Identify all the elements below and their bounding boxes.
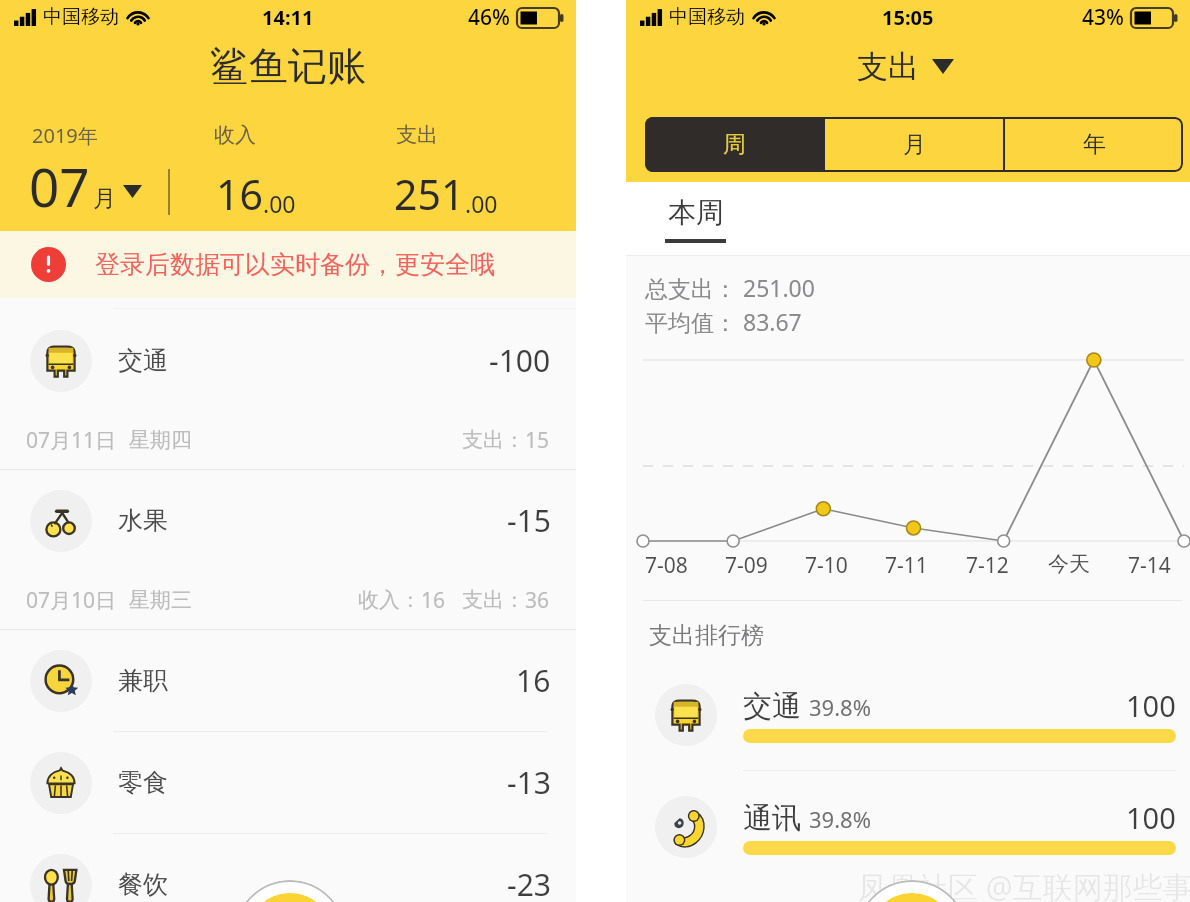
button[interactable]: Add record <box>856 880 968 902</box>
button[interactable]: 月 <box>825 117 1003 172</box>
staticText: 7-14 <box>1128 551 1171 580</box>
staticText: 水果 <box>118 505 168 536</box>
staticText: 支出 <box>857 47 919 86</box>
button[interactable]: 兼职 <box>0 630 576 731</box>
staticText: 月 <box>93 184 116 213</box>
button[interactable]: 07月10日 <box>0 571 576 629</box>
staticText: 07 <box>29 150 90 222</box>
staticText: 2019年 <box>32 122 98 149</box>
staticText: 46% <box>468 3 510 32</box>
button[interactable]: 登录后数据可以实时备份，更安全哦 <box>0 231 576 298</box>
staticText: 收入： <box>358 587 421 613</box>
staticText: 收入 <box>214 122 256 148</box>
staticText: 凤凰社区 @互联网那些事 <box>858 866 1190 902</box>
button[interactable]: 07月11日 <box>0 411 576 469</box>
button[interactable]: 周 <box>645 117 823 172</box>
staticText: 7-12 <box>966 551 1009 580</box>
staticText: 36 <box>525 586 550 615</box>
staticText: 零食 <box>118 767 168 798</box>
staticText: 251 <box>394 166 465 222</box>
staticText: 星期四 <box>129 427 192 453</box>
staticText: 交通 <box>118 345 168 376</box>
staticText: 支出排行榜 <box>649 621 764 650</box>
staticText: 43% <box>1082 3 1124 32</box>
staticText: 登录后数据可以实时备份，更安全哦 <box>95 249 495 280</box>
staticText: 16 <box>516 660 551 701</box>
staticText: 总支出： 251.00 <box>645 272 815 303</box>
staticText: 支出： <box>462 587 525 613</box>
staticText: 中国移动 <box>43 5 119 29</box>
staticText: 兼职 <box>118 665 168 696</box>
button[interactable]: Add record <box>234 880 346 902</box>
staticText: .00 <box>263 188 296 219</box>
staticText: 月 <box>903 130 926 159</box>
staticText: 支出 <box>396 122 438 148</box>
staticText: 平均值： 83.67 <box>645 306 802 337</box>
staticText: 7-10 <box>805 551 848 580</box>
staticText: 通讯 <box>743 800 801 837</box>
staticText: 100 <box>1126 798 1176 837</box>
button[interactable]: 本周 <box>665 195 726 243</box>
staticText: 15 <box>525 426 550 455</box>
staticText: 16 <box>216 166 263 222</box>
button[interactable]: 年 <box>1005 117 1183 172</box>
button[interactable]: 交通 <box>0 310 576 411</box>
staticText: 本周 <box>668 195 724 230</box>
staticText: 7-11 <box>885 551 928 580</box>
button[interactable]: 通讯 <box>626 771 1190 882</box>
staticText: 14:11 <box>262 4 314 31</box>
button[interactable]: 交通 <box>626 659 1190 770</box>
staticText: -23 <box>507 864 551 902</box>
staticText: .00 <box>465 188 498 219</box>
staticText: 鲨鱼记账 <box>210 42 366 91</box>
staticText: 39.8% <box>809 804 871 834</box>
staticText: 15:05 <box>882 4 934 31</box>
staticText: -100 <box>489 340 551 381</box>
button[interactable]: 餐饮 <box>0 834 576 902</box>
staticText: 年 <box>1083 130 1106 159</box>
staticText: -13 <box>507 762 551 803</box>
staticText: 07月11日 <box>26 426 117 455</box>
staticText: 100 <box>1126 686 1176 725</box>
staticText: 星期三 <box>129 587 192 613</box>
button[interactable]: Select month <box>29 150 142 222</box>
staticText: 16 <box>421 586 446 615</box>
button[interactable]: 水果 <box>0 470 576 571</box>
staticText: 39.8% <box>809 692 871 722</box>
staticText: -15 <box>507 500 551 541</box>
staticText: 7-08 <box>645 551 688 580</box>
staticText: 中国移动 <box>669 5 745 29</box>
staticText: 07月10日 <box>26 586 117 615</box>
staticText: 交通 <box>743 688 801 725</box>
staticText: 餐饮 <box>118 869 168 900</box>
staticText: 周 <box>723 130 746 159</box>
button[interactable]: 零食 <box>0 732 576 833</box>
staticText: 支出： <box>462 427 525 453</box>
staticText: 7-09 <box>725 551 768 580</box>
button[interactable]: Switch between income and expense <box>857 47 954 86</box>
staticText: 今天 <box>1048 551 1090 577</box>
